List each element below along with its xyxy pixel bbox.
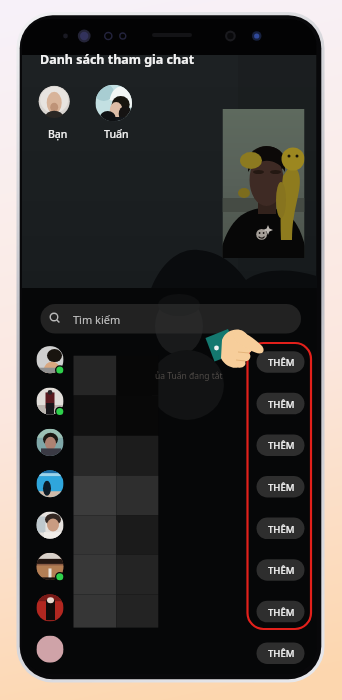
staticText: THÊM	[268, 523, 295, 536]
button[interactable]: THÊM	[257, 559, 305, 581]
staticText: THÊM	[268, 481, 295, 494]
button[interactable]: THÊM	[257, 476, 305, 498]
staticText: THÊM	[268, 564, 295, 577]
staticText: THÊM	[268, 606, 295, 619]
staticText: Danh sách tham gia chat	[40, 51, 195, 68]
staticText: THÊM	[268, 356, 295, 369]
button[interactable]: THÊM	[257, 601, 305, 623]
staticText: THÊM	[268, 439, 295, 452]
staticText: ủa Tuấn đang tắt	[155, 370, 223, 382]
button[interactable]: THÊM	[257, 434, 305, 456]
staticText: THÊM	[268, 398, 295, 411]
staticText: Tìm kiếm	[73, 312, 121, 327]
staticText: Bạn	[48, 127, 68, 141]
button[interactable]: THÊM	[257, 518, 305, 540]
staticText: THÊM	[268, 647, 295, 660]
staticText: Tuấn	[104, 127, 129, 141]
button[interactable]: THÊM	[257, 351, 305, 373]
button[interactable]: THÊM	[257, 393, 305, 415]
button[interactable]: Tìm kiếm	[41, 304, 302, 334]
button[interactable]: THÊM	[257, 642, 305, 664]
